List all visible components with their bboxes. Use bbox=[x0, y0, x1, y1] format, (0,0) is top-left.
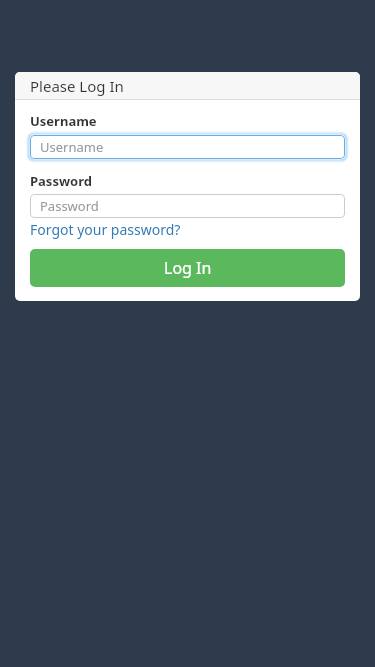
button[interactable]: Forgot your password? bbox=[30, 220, 181, 239]
button[interactable]: Username bbox=[30, 135, 345, 159]
staticText: Password bbox=[40, 197, 99, 215]
button[interactable]: Password bbox=[30, 194, 345, 218]
staticText: Please Log In bbox=[30, 76, 124, 96]
staticText: Log In bbox=[164, 257, 212, 279]
staticText: Username bbox=[40, 138, 104, 156]
staticText: Password bbox=[30, 172, 92, 190]
staticText: Username bbox=[30, 112, 97, 130]
button[interactable]: Log In bbox=[30, 249, 345, 287]
